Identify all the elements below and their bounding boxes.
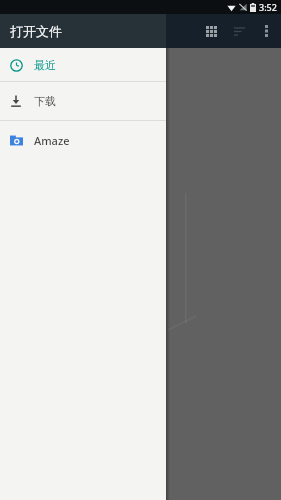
button[interactable]: Amaze — [0, 121, 166, 159]
button[interactable]: Sort — [225, 17, 253, 45]
staticText: 3:52 — [259, 1, 277, 13]
button[interactable]: 最近 — [0, 48, 166, 81]
button[interactable]: 下载 — [0, 82, 166, 120]
staticText: 打开文件 — [10, 23, 62, 39]
staticText: 下载 — [34, 94, 56, 108]
button[interactable]: Grid view — [197, 17, 225, 45]
staticText: 最近 — [34, 58, 56, 72]
button[interactable]: More options — [253, 18, 279, 44]
staticText: Amaze — [34, 133, 70, 148]
